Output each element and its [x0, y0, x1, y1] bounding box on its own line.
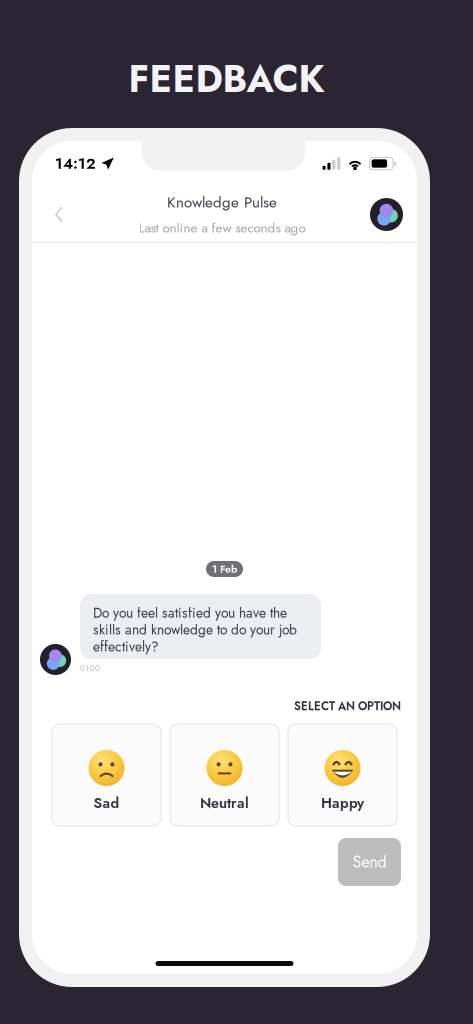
staticText: Last online a few seconds ago — [138, 218, 305, 238]
button[interactable]: Happy — [288, 724, 397, 826]
staticText: Neutral — [200, 792, 249, 813]
staticText: FEEDBACK — [128, 52, 324, 106]
button[interactable]: Sad — [52, 724, 161, 826]
button[interactable]: Profile — [370, 198, 403, 231]
staticText: Sad — [93, 792, 119, 813]
staticText: SELECT AN OPTION — [294, 698, 401, 715]
staticText: Do you feel satisfied you have the skill… — [93, 603, 297, 656]
button[interactable]: Neutral — [170, 724, 279, 826]
staticText: Knowledge Pulse — [167, 191, 277, 213]
staticText: Send — [352, 850, 386, 873]
button[interactable]: Back — [44, 196, 74, 232]
button[interactable]: Send — [338, 838, 401, 886]
staticText: Happy — [321, 792, 364, 813]
staticText: 14:12 — [55, 152, 96, 175]
staticText: 01:00 — [80, 663, 100, 674]
staticText: 1 Feb — [212, 561, 237, 577]
